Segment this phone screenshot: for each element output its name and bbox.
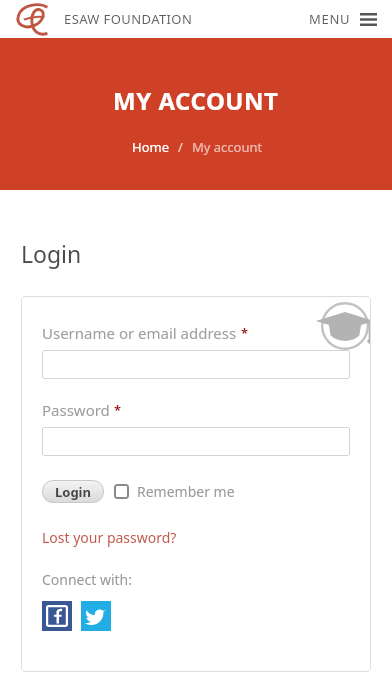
staticText: Connect with: [42,570,133,589]
button[interactable]: Connect with Facebook [42,601,72,631]
button[interactable]: Login [42,480,104,503]
other: ESAW Foundation logo [14,3,52,35]
button[interactable]: Home [130,136,171,158]
staticText: MY ACCOUNT [113,84,279,117]
other: Open menu [360,13,377,26]
staticText: Username or email address [42,323,237,343]
staticText: Login [21,238,82,269]
staticText: * [114,401,122,419]
button[interactable] [42,350,350,379]
staticText: Password [42,400,110,420]
staticText: * [241,324,249,342]
button[interactable]: Lost your password? [42,526,177,549]
button[interactable]: Remember me [114,479,235,504]
staticText: Login [55,483,91,501]
button[interactable] [42,427,350,456]
button[interactable]: MENU [304,3,382,35]
staticText: Remember me [137,482,235,501]
staticText: My account [192,138,263,156]
staticText: MENU [309,10,351,28]
button[interactable]: Connect with Twitter [81,601,111,631]
other: Education badge [321,302,369,350]
staticText: / [178,138,183,156]
staticText: ESAW FOUNDATION [64,10,193,28]
